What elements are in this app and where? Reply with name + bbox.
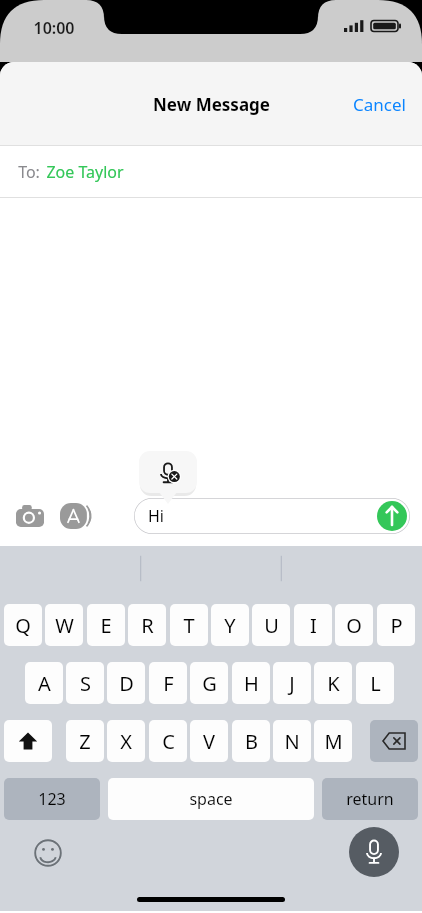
button[interactable]: To: [0,146,422,198]
button[interactable]: S [66,662,104,704]
button[interactable]: Dictate [349,827,399,877]
staticText: return [346,788,394,810]
staticText: X [120,728,132,755]
button[interactable]: H [232,662,270,704]
button[interactable]: B [232,720,270,762]
staticText: Y [224,612,236,639]
staticText: M [324,728,343,755]
button[interactable]: Q [4,604,42,646]
button[interactable]: L [356,662,394,704]
staticText: J [289,670,295,697]
staticText: 123 [38,788,66,810]
staticText: Cancel [353,93,406,116]
button[interactable]: A [25,662,63,704]
button[interactable]: Shift [4,720,52,762]
staticText: Q [15,612,31,639]
button[interactable]: R [128,604,166,646]
staticText: U [264,612,279,639]
button[interactable]: N [273,720,311,762]
button[interactable]: Hi [134,498,410,534]
button[interactable]: D [107,662,145,704]
button[interactable]: U [252,604,290,646]
button[interactable]: space [108,778,314,820]
button[interactable]: return [322,778,418,820]
staticText: P [390,612,403,639]
button[interactable]: P [377,604,415,646]
button[interactable]: I [294,604,332,646]
button[interactable]: T [170,604,208,646]
staticText: S [80,670,91,697]
staticText: F [163,670,174,697]
staticText: Hi [148,505,164,527]
staticText: T [183,612,195,639]
button[interactable]: X [107,720,145,762]
button[interactable]: V [190,720,228,762]
staticText: N [284,728,300,755]
staticText: To: [18,161,40,183]
staticText: Z [79,728,91,755]
button[interactable]: Delete [370,720,418,762]
staticText: New Message [153,93,270,116]
staticText: B [245,728,258,755]
button[interactable]: G [190,662,228,704]
staticText: Zoe Taylor [46,161,124,183]
staticText: 10:00 [33,17,75,39]
button[interactable]: F [149,662,187,704]
button[interactable]: Y [211,604,249,646]
button[interactable]: M [314,720,352,762]
button[interactable]: Apps [54,494,98,538]
button[interactable]: W [45,604,83,646]
staticText: D [119,670,134,697]
staticText: C [162,728,175,755]
staticText: space [189,788,233,810]
staticText: I [310,612,317,639]
staticText: O [346,612,362,639]
button[interactable]: Send [377,501,407,531]
button[interactable]: Emoji [26,831,70,875]
button[interactable]: Z [66,720,104,762]
button[interactable]: E [87,604,125,646]
staticText: A [38,670,51,697]
staticText: K [327,670,340,697]
staticText: G [202,670,217,697]
staticText: H [244,670,259,697]
button[interactable]: K [314,662,352,704]
button[interactable]: 123 [4,778,100,820]
button[interactable]: Cancel [337,83,422,126]
staticText: W [55,612,74,639]
button[interactable]: Camera [8,494,52,538]
staticText: V [203,728,215,755]
staticText: E [100,612,112,639]
button[interactable]: J [273,662,311,704]
button[interactable]: O [335,604,373,646]
staticText: L [370,670,381,697]
button[interactable]: C [149,720,187,762]
staticText: R [141,612,154,639]
